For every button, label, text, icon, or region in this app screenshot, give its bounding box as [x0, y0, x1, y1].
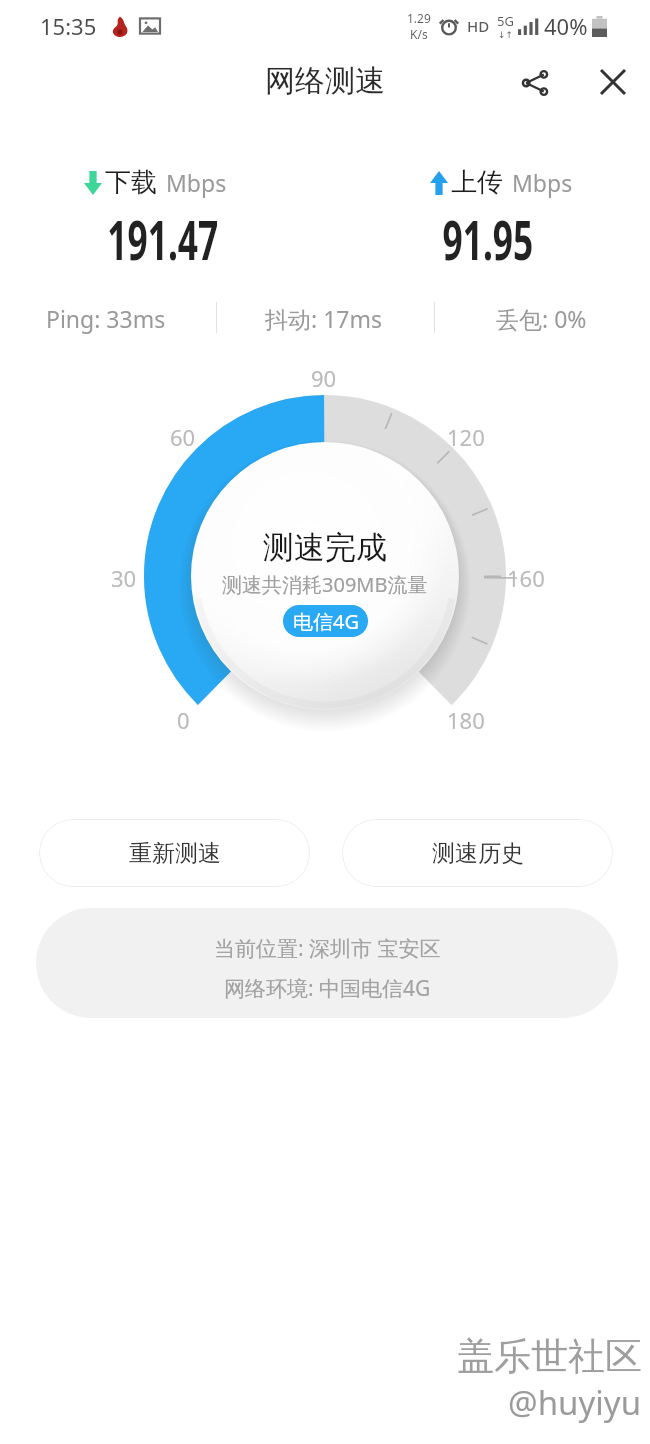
staticText: 120 — [447, 422, 485, 452]
staticText: 电信4G — [293, 608, 359, 635]
staticText: 90 — [311, 363, 337, 393]
staticText: 重新测速 — [129, 839, 221, 868]
staticText: 191.47 — [107, 203, 219, 275]
button[interactable]: 测速历史 — [342, 819, 613, 887]
staticText: 91.95 — [442, 203, 533, 275]
staticText: 测速历史 — [432, 839, 524, 868]
staticText: 30 — [111, 563, 137, 593]
button[interactable]: 电信4G — [283, 605, 368, 637]
button[interactable]: Share — [508, 56, 562, 110]
button[interactable]: Close — [589, 58, 637, 106]
button[interactable]: 重新测速 — [39, 819, 310, 887]
staticText: 0 — [177, 705, 190, 735]
staticText: 丢包: 0% — [496, 303, 587, 334]
staticText: 5G — [497, 12, 514, 30]
staticText: 40% — [544, 11, 588, 41]
staticText: 15:35 — [40, 11, 97, 41]
staticText: @huyiyu — [508, 1380, 642, 1425]
staticText: 160 — [507, 563, 545, 593]
staticText: 下载 — [105, 166, 157, 199]
staticText: 测速共消耗309MB流量 — [222, 571, 428, 598]
staticText: 网络环境: 中国电信4G — [224, 974, 431, 1003]
staticText: 1.29 — [407, 10, 431, 26]
staticText: K/s — [410, 26, 428, 42]
staticText: Mbps — [512, 167, 573, 198]
staticText: 60 — [170, 422, 196, 452]
staticText: ↓↑ — [498, 30, 514, 40]
staticText: 上传 — [451, 166, 503, 199]
staticText: 测速完成 — [263, 528, 387, 567]
staticText: Mbps — [166, 167, 227, 198]
staticText: HD — [467, 16, 490, 36]
staticText: 盖乐世社区 — [457, 1333, 642, 1380]
staticText: 抖动: 17ms — [265, 303, 382, 334]
staticText: 当前位置: 深圳市 宝安区 — [214, 934, 441, 963]
staticText: Ping: 33ms — [46, 303, 166, 334]
staticText: 180 — [447, 705, 485, 735]
staticText: 网络测速 — [265, 62, 385, 100]
